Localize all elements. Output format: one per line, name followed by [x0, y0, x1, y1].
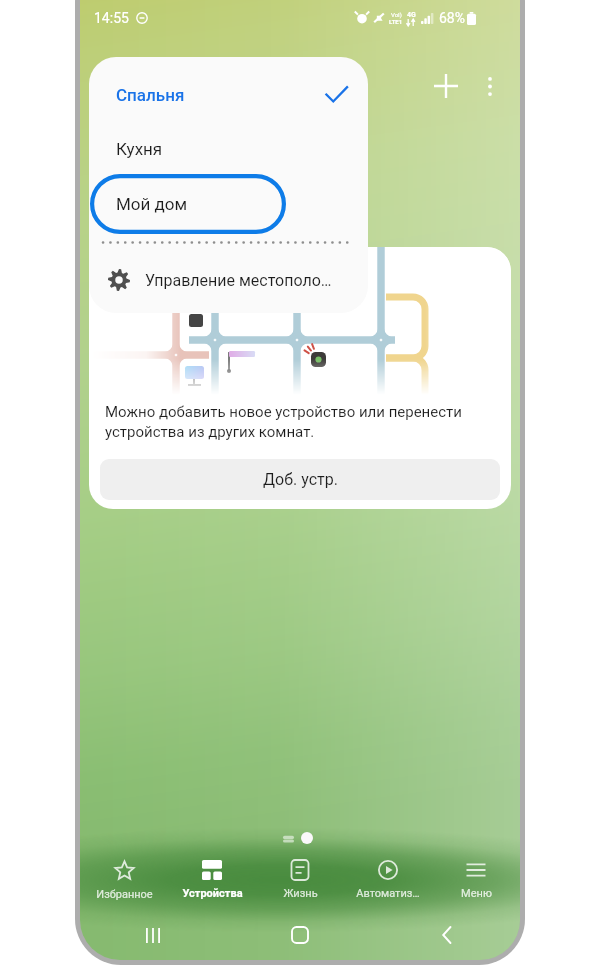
staticText: Автоматиз…: [356, 887, 420, 900]
staticText: Доб. устр.: [263, 470, 338, 489]
staticText: Мой дом: [116, 194, 188, 214]
button[interactable]: Home: [226, 915, 373, 955]
staticText: Меню: [461, 887, 492, 900]
button[interactable]: Add device: [424, 64, 468, 108]
button[interactable]: Избранное: [80, 856, 168, 910]
button[interactable]: Кухня: [89, 121, 368, 177]
button[interactable]: More options: [468, 64, 512, 108]
staticText: VoI): [391, 11, 402, 18]
button[interactable]: Управление местополо…: [89, 249, 368, 311]
staticText: 4G: [407, 11, 416, 19]
button[interactable]: Жизнь: [256, 856, 344, 910]
staticText: Жизнь: [283, 887, 318, 900]
button[interactable]: Мой дом: [90, 174, 286, 234]
button[interactable]: Спальня: [89, 67, 368, 123]
staticText: 68%: [439, 10, 465, 26]
staticText: 14:55: [94, 10, 129, 26]
button[interactable]: Back: [373, 915, 520, 955]
staticText: Кухня: [116, 139, 163, 159]
staticText: LTE1: [389, 18, 403, 25]
button[interactable]: Устройства: [168, 856, 256, 910]
button[interactable]: Автоматиз…: [344, 856, 432, 910]
staticText: Можно добавить новое устройство или пере…: [105, 403, 462, 440]
staticText: Управление местополо…: [145, 271, 332, 290]
staticText: Избранное: [96, 888, 153, 901]
button[interactable]: Меню: [432, 856, 520, 910]
staticText: Спальня: [116, 85, 185, 105]
button[interactable]: Recents: [80, 915, 226, 955]
staticText: Устройства: [182, 887, 243, 900]
button[interactable]: Доб. устр.: [100, 459, 500, 500]
